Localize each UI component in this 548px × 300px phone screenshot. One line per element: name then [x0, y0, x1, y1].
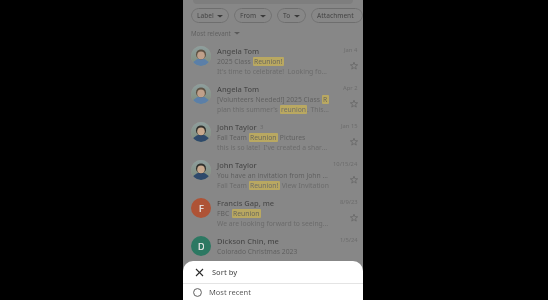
- button[interactable]: Contact photo: [183, 156, 363, 194]
- button[interactable]: Contact photo: [191, 84, 211, 104]
- button[interactable]: Close: [193, 266, 205, 278]
- button[interactable]: Most recent: [183, 284, 363, 300]
- staticText: To: [283, 11, 291, 20]
- staticText: Pictures: [278, 133, 306, 142]
- staticText: . This year we're…: [307, 105, 329, 114]
- staticText: Jan 15: [341, 122, 358, 130]
- staticText: 8/9/23: [340, 198, 358, 206]
- staticText: We are looking forward to seeing you! Ou…: [217, 219, 329, 228]
- staticText: Colorado Christmas 2023: [217, 247, 298, 256]
- button[interactable]: Contact photo: [191, 46, 211, 66]
- button[interactable]: Most relevant: [191, 28, 240, 38]
- button[interactable]: Contact photo: [183, 42, 363, 80]
- staticText: Dickson Chin, me: [217, 236, 279, 246]
- staticText: reunion: [281, 105, 306, 114]
- other: Star: [350, 100, 358, 108]
- staticText: this is so late! I've created a shared a…: [217, 143, 329, 152]
- staticText: Francis Gap, me: [217, 198, 275, 208]
- button[interactable]: Attachment: [311, 8, 363, 23]
- button[interactable]: Star: [350, 176, 358, 184]
- button[interactable]: Star: [350, 214, 358, 222]
- button[interactable]: Contact F: [183, 194, 363, 232]
- staticText: John Taylor: [217, 160, 257, 170]
- staticText: Sort by: [212, 267, 238, 277]
- staticText: D: [198, 240, 205, 252]
- staticText: 3: [260, 123, 264, 131]
- button[interactable]: Label: [191, 8, 229, 23]
- button[interactable]: Star: [350, 138, 358, 146]
- button[interactable]: Contact photo: [183, 118, 363, 156]
- staticText: [Volunteers Needed!] 2025 Class: [217, 95, 322, 104]
- staticText: FBC: [217, 209, 232, 218]
- staticText: Fall Team: [217, 133, 249, 142]
- other: Star: [350, 138, 358, 146]
- staticText: Apr 2: [343, 84, 358, 92]
- staticText: From: [240, 11, 257, 20]
- staticText: Reunion: [233, 209, 260, 218]
- staticText: You have an invitation from John Taylor!: [217, 171, 329, 180]
- staticText: Reunion: [323, 95, 328, 104]
- staticText: Attachment: [317, 11, 354, 20]
- staticText: Most recent: [209, 287, 251, 297]
- staticText: Label: [197, 11, 214, 20]
- staticText: Angela Tom: [217, 46, 260, 56]
- other: Star: [350, 62, 358, 70]
- staticText: Fall Team: [217, 181, 249, 190]
- staticText: Reunion!: [250, 181, 279, 190]
- staticText: 1/5/24: [340, 236, 358, 244]
- button[interactable]: Contact D: [191, 236, 211, 256]
- staticText: 2025 Class: [217, 57, 253, 66]
- staticText: Reunion: [250, 133, 277, 142]
- other: Star: [350, 176, 358, 184]
- other: Star: [350, 214, 358, 222]
- button[interactable]: To: [277, 8, 306, 23]
- staticText: F: [199, 202, 204, 214]
- staticText: Reunion!: [254, 57, 283, 66]
- button[interactable]: Contact photo: [191, 122, 211, 142]
- button[interactable]: Contact D: [183, 232, 363, 262]
- button[interactable]: Star: [350, 62, 358, 70]
- button[interactable]: Contact photo: [191, 160, 211, 180]
- button[interactable]: Contact photo: [183, 80, 363, 118]
- staticText: Jan 4: [344, 46, 358, 54]
- staticText: John Taylor: [217, 122, 257, 132]
- staticText: It's time to celebrate! Looking forward …: [217, 67, 329, 76]
- staticText: 10/15/24: [333, 160, 358, 168]
- staticText: Angela Tom: [217, 84, 260, 94]
- button[interactable]: Star: [350, 100, 358, 108]
- staticText: Most relevant: [191, 29, 231, 37]
- staticText: plan this summer's: [217, 105, 280, 114]
- button[interactable]: Contact F: [191, 198, 211, 218]
- staticText: View Invitation: [280, 181, 329, 190]
- button[interactable]: From: [234, 8, 272, 23]
